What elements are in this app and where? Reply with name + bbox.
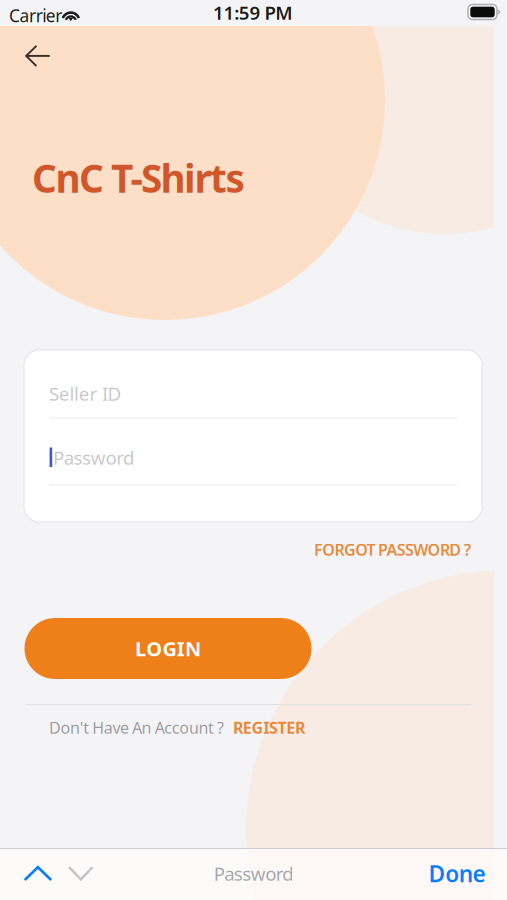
button[interactable]: Back (10, 32, 66, 80)
button[interactable]: Next field (56, 848, 106, 899)
staticText: Password (214, 861, 293, 886)
staticText: REGISTER (233, 717, 305, 738)
staticText: Done (428, 858, 485, 888)
staticText: Seller ID (49, 381, 122, 406)
button[interactable]: FORGOT PASSWORD ? (306, 532, 479, 567)
staticText: CnC T-Shirts (32, 152, 244, 203)
button[interactable]: Previous field (13, 848, 63, 899)
button[interactable]: LOGIN (24, 618, 311, 679)
staticText: LOGIN (135, 635, 201, 662)
staticText: Carrier (9, 4, 62, 27)
staticText: FORGOT PASSWORD ? (314, 539, 471, 560)
staticText: Don't Have An Account ? (49, 717, 224, 738)
button[interactable]: Done (419, 848, 495, 899)
button[interactable]: REGISTER (224, 712, 305, 743)
staticText: Password (53, 445, 134, 470)
staticText: 11:59 PM (213, 0, 292, 25)
